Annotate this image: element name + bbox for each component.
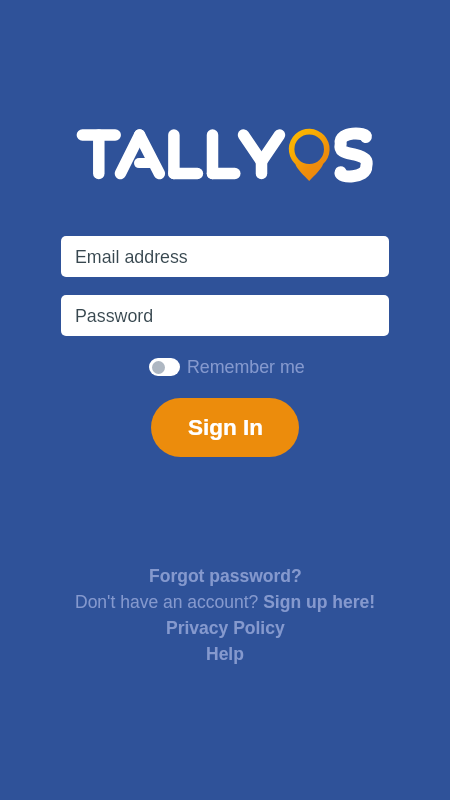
button[interactable]: Don't have an account? Sign up here! <box>75 589 376 615</box>
button[interactable]: Help <box>206 641 244 667</box>
staticText: Forgot password? <box>149 566 302 586</box>
staticText: Sign In <box>188 415 263 440</box>
other: TallyOS logo <box>0 0 450 800</box>
button[interactable]: Forgot password? <box>149 563 302 589</box>
staticText: Password <box>75 306 154 326</box>
button[interactable]: Password <box>61 295 389 336</box>
staticText: Don't have an account? Sign up here! <box>75 592 376 612</box>
staticText: Email address <box>75 247 188 267</box>
button[interactable]: Sign In <box>151 398 299 457</box>
staticText: Help <box>206 644 244 664</box>
button[interactable]: Email address <box>61 236 389 277</box>
staticText: Remember me <box>187 357 305 377</box>
staticText: Privacy Policy <box>166 618 285 638</box>
button[interactable]: Remember me <box>149 355 305 379</box>
button[interactable]: Privacy Policy <box>166 615 285 641</box>
